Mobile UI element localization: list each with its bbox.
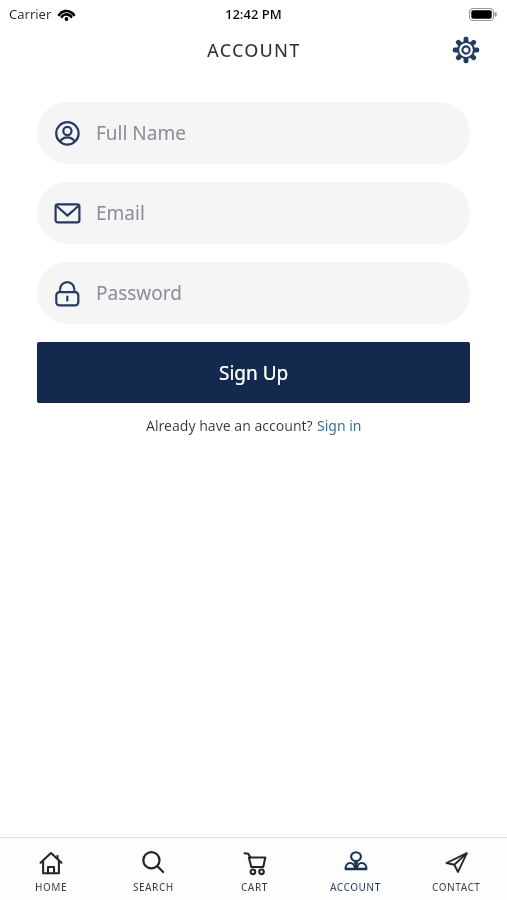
button[interactable]: Email [37,182,470,244]
button[interactable]: CONTACT [406,838,507,900]
staticText: ACCOUNT [330,880,381,894]
staticText: Sign Up [219,360,289,386]
button[interactable]: Sign Up [37,342,470,403]
staticText: Carrier [9,5,52,23]
button[interactable]: CART [204,838,305,900]
button[interactable]: SEARCH [102,838,204,900]
button[interactable]: Full Name [37,102,470,164]
staticText: HOME [35,880,68,894]
button[interactable]: Password [37,262,470,324]
staticText: CART [241,880,268,894]
staticText: SEARCH [133,880,174,894]
button[interactable]: HOME [0,838,102,900]
button[interactable]: ACCOUNT [305,838,406,900]
staticText: Password [96,280,182,306]
staticText: 12:42 PM [225,5,282,23]
staticText: CONTACT [432,880,481,894]
staticText: Full Name [96,120,186,146]
staticText: Email [96,200,145,226]
staticText: Already have an account? [146,416,317,435]
button[interactable] [451,35,481,65]
staticText: ACCOUNT [207,38,301,63]
button[interactable]: Sign in [317,416,362,435]
